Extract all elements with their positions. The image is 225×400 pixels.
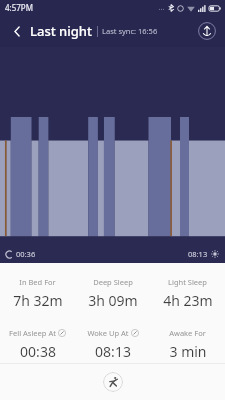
staticText: 00:38 (20, 342, 56, 361)
staticText: Light Sleep (168, 277, 207, 287)
button[interactable]: In Bed For (0, 275, 75, 312)
button[interactable]: Light Sleep (150, 275, 225, 312)
staticText: 08:13 (95, 342, 131, 361)
staticText: Last night (30, 22, 92, 40)
button[interactable]: Share (197, 21, 217, 41)
staticText: In Bed For (19, 277, 56, 287)
other: Edit (131, 329, 139, 337)
staticText: 4h 23m (163, 291, 213, 310)
button[interactable]: Activity (103, 372, 123, 392)
staticText: Woke Up At (87, 328, 129, 338)
staticText: Awake For (169, 328, 206, 338)
staticText: Last sync: 16:56 (102, 26, 158, 36)
staticText: 3h 09m (88, 291, 138, 310)
button[interactable]: Fell Asleep At (0, 326, 75, 363)
button[interactable]: Woke Up At (75, 326, 150, 363)
staticText: 00:36 (16, 249, 36, 259)
button[interactable]: Back (6, 20, 28, 42)
staticText: 3 min (169, 342, 207, 361)
button[interactable]: Awake For (150, 326, 225, 363)
other: Edit (58, 329, 66, 337)
staticText: 7h 32m (13, 291, 63, 310)
staticText: Fell Asleep At (9, 328, 56, 338)
button[interactable]: Deep Sleep (75, 275, 150, 312)
staticText: Deep Sleep (93, 277, 133, 287)
staticText: 4:57PM (5, 2, 33, 13)
staticText: 08:13 (188, 249, 208, 259)
